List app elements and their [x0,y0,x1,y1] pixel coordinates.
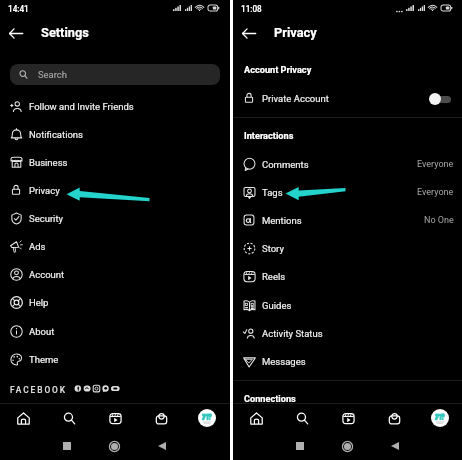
button[interactable]: Home button [342,441,353,452]
staticText: Comments [262,159,309,170]
button[interactable]: Reels [104,407,126,429]
staticText: Ads [29,241,46,252]
staticText: Settings [41,25,89,40]
button[interactable]: Mentions [233,206,462,234]
staticText: About [29,326,55,337]
button[interactable]: Notifications [0,120,230,148]
button[interactable]: Back [238,22,260,44]
button[interactable]: Shop [150,407,172,429]
staticText: Notifications [29,129,84,140]
button[interactable]: Security [0,204,230,232]
staticText: Interactions [244,130,294,141]
button[interactable]: Guides [233,291,462,319]
button[interactable]: Search [291,407,313,429]
staticText: Follow and Invite Friends [29,101,134,112]
button[interactable]: Back [158,442,166,450]
button[interactable]: Help [0,288,230,316]
staticText: Tags [262,187,283,198]
button[interactable]: Story [233,234,462,262]
button[interactable]: Tags [233,178,462,206]
staticText: Help [29,297,49,308]
staticText: Theme [29,354,59,365]
staticText: Account [29,269,65,280]
staticText: No One [424,215,454,226]
button[interactable]: Home button [109,441,120,452]
staticText: Business [29,157,68,168]
button[interactable]: About [0,317,230,345]
button[interactable]: Private Account [233,84,462,112]
staticText: Everyone [417,187,454,198]
button[interactable]: Reels [337,407,359,429]
staticText: Privacy [29,185,60,196]
button[interactable]: Back [5,22,27,44]
staticText: Everyone [417,159,454,170]
button[interactable]: Follow and Invite Friends [0,92,230,120]
button[interactable]: Search [58,407,80,429]
staticText: Mentions [262,215,302,226]
staticText: FACEBOOK [10,385,67,395]
button[interactable]: Back [391,442,399,450]
button[interactable]: Shop [383,407,405,429]
button[interactable]: Reels [233,262,462,290]
staticText: Messages [262,356,306,367]
button[interactable]: Ads [0,232,230,260]
button[interactable]: Comments [233,150,462,178]
button[interactable]: Search [10,64,220,85]
button[interactable]: Privacy [0,176,230,204]
staticText: Reels [262,271,286,282]
staticText: Activity Status [262,328,323,339]
button[interactable]: Profile [198,409,216,427]
staticText: Privacy [274,25,317,40]
button[interactable]: Home [12,407,34,429]
staticText: 11:08 [241,4,262,14]
button[interactable]: Home [245,407,267,429]
button[interactable]: Messages [233,347,462,375]
staticText: Guides [262,300,292,311]
staticText: Account Privacy [244,64,312,75]
staticText: Search [38,69,67,80]
button[interactable]: Business [0,148,230,176]
button[interactable]: Account [0,260,230,288]
staticText: Private Account [262,93,329,104]
staticText: 14:41 [8,4,29,14]
button[interactable]: Theme [0,345,230,373]
staticText: Security [29,213,64,224]
staticText: Connections [244,393,296,404]
button[interactable]: Activity Status [233,319,462,347]
button[interactable]: Profile [431,409,449,427]
staticText: Story [262,243,284,254]
